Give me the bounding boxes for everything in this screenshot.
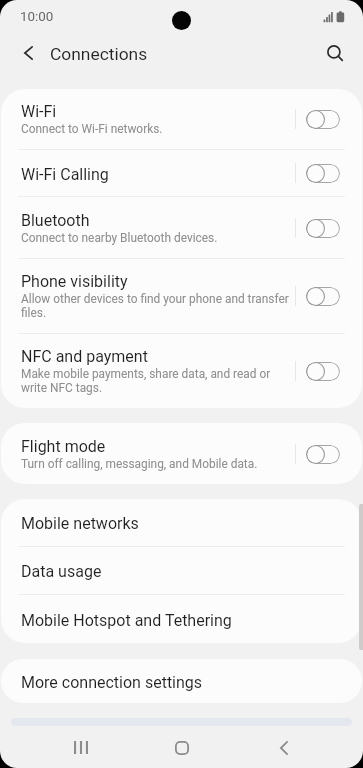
button[interactable]: Toggle <box>306 110 340 129</box>
staticText: Turn off calling, messaging, and Mobile … <box>21 457 258 471</box>
staticText: Connect to Wi-Fi networks. <box>21 122 163 136</box>
button[interactable]: Toggle <box>306 362 340 381</box>
staticText: Data usage <box>21 562 102 581</box>
staticText: NFC and payment <box>21 347 148 366</box>
button[interactable]: Wi-Fi Calling <box>1 150 362 196</box>
staticText: Bluetooth <box>21 211 90 230</box>
button[interactable]: Toggle <box>306 287 340 306</box>
staticText: Allow other devices to find your phone a… <box>21 292 289 320</box>
button[interactable]: Mobile Hotspot and Tethering <box>1 595 362 643</box>
button[interactable]: Search <box>319 35 361 70</box>
staticText: Phone visibility <box>21 272 128 291</box>
button[interactable]: More connection settings <box>1 659 362 703</box>
staticText: Wi-Fi <box>21 102 57 121</box>
button[interactable]: Recent apps <box>58 727 103 768</box>
button[interactable]: Toggle <box>306 164 340 183</box>
button[interactable]: Home <box>159 727 204 768</box>
button[interactable]: Mobile networks <box>1 499 362 546</box>
button[interactable]: Toggle <box>306 219 340 238</box>
button[interactable]: Bluetooth <box>1 197 362 258</box>
staticText: Mobile Hotspot and Tethering <box>21 611 232 630</box>
button[interactable]: Data usage <box>1 547 362 594</box>
staticText: Make mobile payments, share data, and re… <box>21 367 289 395</box>
staticText: Wi-Fi Calling <box>21 165 109 184</box>
staticText: Connect to nearby Bluetooth devices. <box>21 231 218 245</box>
button[interactable]: Phone visibility <box>1 259 362 333</box>
staticText: More connection settings <box>21 673 203 692</box>
button[interactable]: Flight mode <box>1 423 362 484</box>
button[interactable]: NFC and payment <box>1 334 362 408</box>
staticText: Mobile networks <box>21 514 139 533</box>
staticText: Connections <box>50 44 148 64</box>
button[interactable]: Toggle <box>306 445 340 464</box>
button[interactable]: Back <box>261 727 306 768</box>
staticText: 10:00 <box>20 9 54 25</box>
button[interactable]: Wi-Fi <box>1 89 362 149</box>
button[interactable]: Navigate up <box>4 35 46 70</box>
staticText: Flight mode <box>21 437 106 456</box>
